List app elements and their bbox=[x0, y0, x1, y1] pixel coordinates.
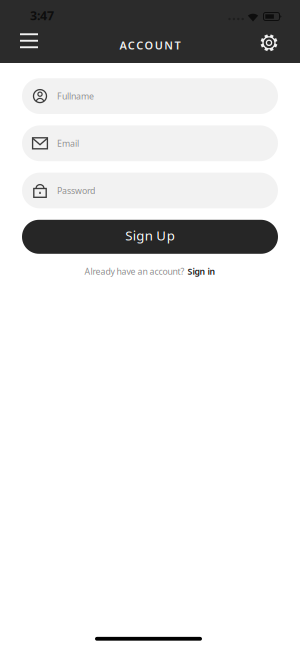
staticText: S bbox=[125, 226, 132, 244]
staticText: T bbox=[175, 38, 181, 53]
staticText: i bbox=[133, 226, 136, 244]
button[interactable]: Menu bbox=[14, 27, 44, 54]
button[interactable]: Email bbox=[22, 125, 278, 161]
button[interactable]: Settings bbox=[253, 27, 285, 59]
button[interactable]: Password bbox=[22, 173, 278, 208]
button[interactable]: Sign in bbox=[187, 265, 215, 277]
staticText: Fullname bbox=[57, 90, 94, 102]
staticText: n bbox=[145, 226, 153, 244]
staticText: g bbox=[136, 226, 144, 244]
staticText: p bbox=[167, 226, 175, 244]
staticText: U bbox=[155, 38, 163, 53]
staticText: O bbox=[144, 38, 153, 53]
staticText: 3:47 bbox=[30, 7, 54, 24]
staticText: A bbox=[119, 38, 126, 53]
staticText: Already have an account? bbox=[84, 265, 184, 277]
staticText: Password bbox=[57, 184, 95, 196]
button[interactable]: S bbox=[22, 220, 278, 254]
staticText: C bbox=[128, 38, 135, 53]
staticText: Email bbox=[57, 137, 79, 149]
button[interactable]: Fullname bbox=[22, 78, 278, 114]
staticText: N bbox=[164, 38, 173, 53]
staticText: Sign in bbox=[187, 265, 215, 277]
staticText: U bbox=[156, 226, 166, 244]
staticText: C bbox=[136, 38, 143, 53]
